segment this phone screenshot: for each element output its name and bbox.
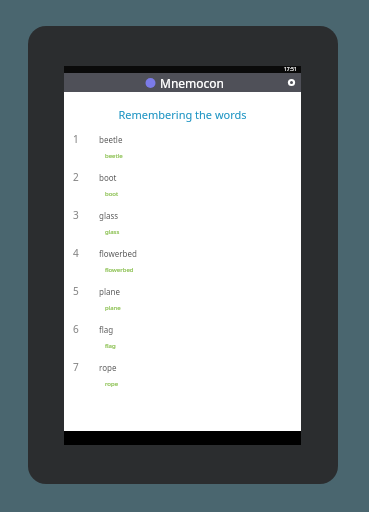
staticText: 6 — [73, 322, 79, 336]
button[interactable]: beetle — [91, 130, 292, 148]
button[interactable]: flowerbed — [91, 244, 292, 262]
staticText: flowerbed — [99, 248, 137, 259]
staticText: 4 — [73, 246, 79, 260]
staticText: 1 — [73, 132, 79, 146]
staticText: plane — [105, 304, 121, 312]
staticText: 7 — [73, 360, 79, 374]
staticText: 5 — [73, 284, 79, 298]
staticText: beetle — [105, 152, 123, 160]
staticText: rope — [105, 380, 119, 388]
staticText: glass — [99, 210, 119, 221]
button[interactable]: plane — [91, 282, 292, 300]
button[interactable]: Settings — [282, 73, 301, 92]
button[interactable]: flag — [91, 320, 292, 338]
staticText: boot — [105, 190, 119, 198]
staticText: flowerbed — [105, 266, 134, 274]
staticText: rope — [99, 362, 117, 373]
button[interactable]: glass — [91, 206, 292, 224]
button[interactable]: boot — [91, 168, 292, 186]
staticText: plane — [99, 286, 120, 297]
staticText: beetle — [99, 134, 123, 145]
staticText: 17:51 — [284, 66, 297, 73]
staticText: 3 — [73, 208, 79, 222]
staticText: flag — [105, 342, 116, 350]
staticText: Remembering the words — [64, 107, 301, 122]
staticText: glass — [105, 228, 120, 236]
staticText: Mnemocon — [160, 75, 224, 91]
staticText: 2 — [73, 170, 79, 184]
button[interactable]: rope — [91, 358, 292, 376]
staticText: boot — [99, 172, 117, 183]
staticText: flag — [99, 324, 114, 335]
